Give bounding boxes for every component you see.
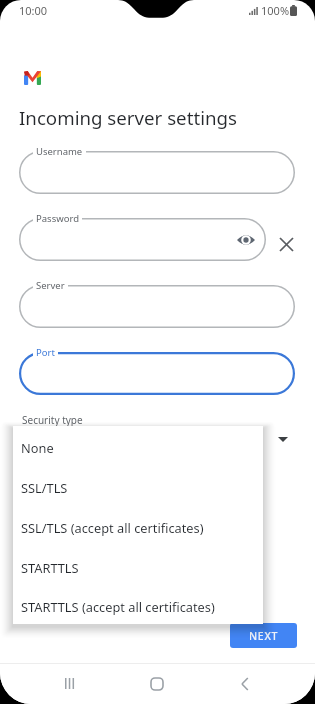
button[interactable]: Port [19,352,295,395]
staticText: None [21,439,54,456]
staticText: Server [36,279,65,292]
staticText: 10:00 [19,3,48,18]
button[interactable]: STARTTLS (accept all certificates) [13,586,263,624]
staticText: Port [36,346,55,359]
staticText: SSL/TLS (accept all certificates) [21,519,204,536]
staticText: 100% [261,3,290,18]
staticText: STARTTLS (accept all certificates) [21,598,215,615]
staticText: Incoming server settings [19,105,237,130]
staticText: Security type [22,413,83,427]
button[interactable]: Recents [26,663,113,704]
button[interactable]: None [13,426,263,466]
button[interactable]: Show password [234,228,258,252]
button[interactable]: Password [19,218,266,261]
staticText: SSL/TLS [21,479,68,496]
button[interactable]: Security type dropdown [273,429,293,449]
button[interactable]: SSL/TLS [13,466,263,506]
staticText: NEXT [249,629,279,643]
button[interactable]: STARTTLS [13,546,263,586]
button[interactable]: Back [201,663,289,704]
staticText: Password [36,212,79,225]
button[interactable]: Home [113,663,201,704]
button[interactable]: Server [19,285,295,328]
button[interactable]: Username [19,151,295,194]
staticText: STARTTLS [21,559,79,576]
button[interactable]: SSL/TLS (accept all certificates) [13,506,263,546]
button[interactable]: NEXT [230,623,297,648]
button[interactable]: Clear password [272,230,298,256]
staticText: Username [36,145,83,158]
